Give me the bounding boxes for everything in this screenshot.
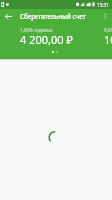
staticText: 15:31 bbox=[97, 2, 109, 8]
staticText: 10 000,00 ₽ bbox=[104, 32, 112, 47]
staticText: 1,00% годовых bbox=[20, 27, 53, 33]
button[interactable]: More options bbox=[98, 9, 112, 23]
staticText: 0,01% годовых bbox=[104, 27, 112, 33]
staticText: 4 200,00 ₽ bbox=[20, 32, 73, 47]
staticText: Сберегательный счет bbox=[20, 12, 86, 20]
button[interactable]: Back bbox=[0, 9, 16, 23]
